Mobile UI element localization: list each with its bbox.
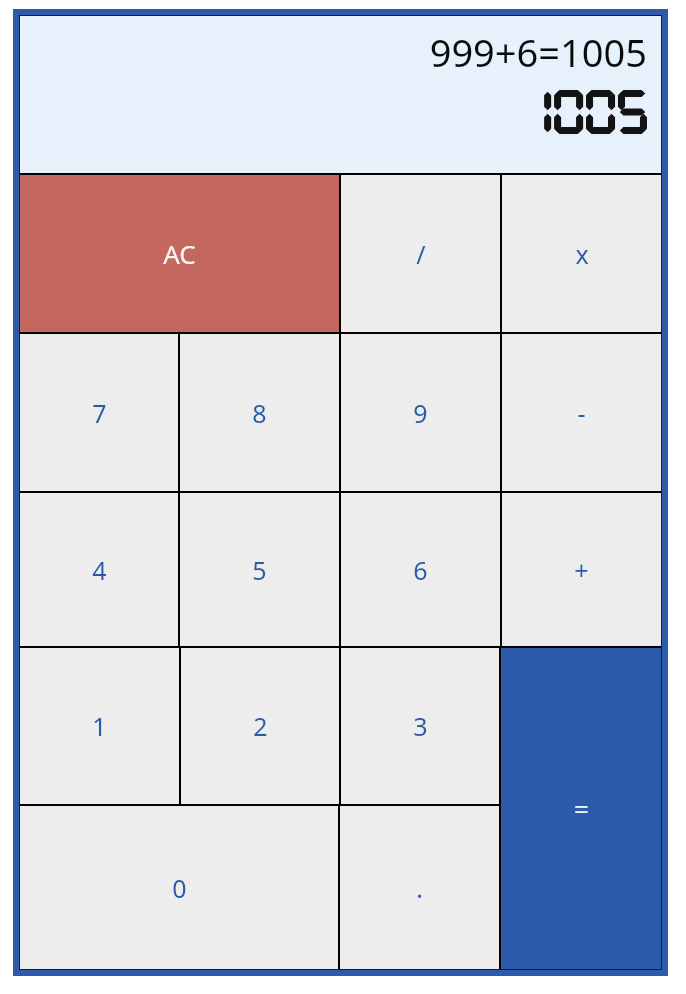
button[interactable]: =: [501, 648, 661, 969]
staticText: 3: [413, 709, 428, 743]
button[interactable]: 5: [180, 493, 339, 646]
staticText: 8: [252, 396, 267, 430]
button[interactable]: 1: [20, 648, 179, 804]
staticText: AC: [163, 236, 196, 271]
button[interactable]: 8: [180, 334, 339, 491]
staticText: .: [416, 871, 423, 905]
button[interactable]: 7: [20, 334, 178, 491]
staticText: /: [416, 237, 426, 271]
button[interactable]: x: [502, 175, 661, 332]
staticText: =: [574, 791, 589, 826]
staticText: 6: [413, 553, 428, 587]
button[interactable]: .: [340, 806, 499, 969]
staticText: 1: [92, 709, 107, 743]
button[interactable]: 6: [341, 493, 500, 646]
button[interactable]: AC: [20, 175, 339, 332]
staticText: x: [575, 237, 589, 271]
staticText: 5: [252, 553, 267, 587]
staticText: 9: [413, 396, 428, 430]
staticText: 7: [92, 396, 107, 430]
staticText: 999+6=1005: [429, 26, 647, 78]
button[interactable]: +: [502, 493, 661, 646]
button[interactable]: /: [341, 175, 500, 332]
staticText: 2: [253, 709, 268, 743]
staticText: +: [574, 553, 589, 587]
button[interactable]: 4: [20, 493, 178, 646]
button[interactable]: 2: [181, 648, 339, 804]
staticText: -: [577, 396, 586, 430]
button[interactable]: 0: [20, 806, 338, 969]
staticText: 0: [172, 871, 187, 905]
staticText: 4: [92, 553, 107, 587]
button[interactable]: 3: [341, 648, 499, 804]
button[interactable]: 9: [341, 334, 500, 491]
button[interactable]: -: [502, 334, 661, 491]
